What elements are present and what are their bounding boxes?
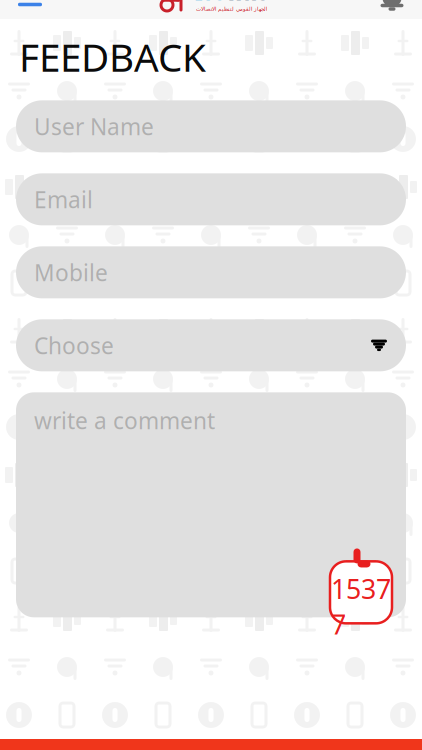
button[interactable]: Menu	[2, 0, 58, 19]
staticText: User Name	[34, 111, 154, 141]
staticText: ITU	[195, 0, 226, 5]
staticText: WRC	[226, 0, 267, 5]
button[interactable]: Mobile	[16, 246, 406, 298]
button[interactable]: Email	[16, 173, 406, 225]
staticText: write a comment	[34, 405, 215, 435]
button[interactable]: Choose	[16, 319, 406, 371]
button[interactable]: Call 15377	[330, 561, 392, 623]
staticText: FEEDBACK	[19, 31, 206, 82]
button[interactable]: User Name	[16, 100, 406, 152]
staticText: Choose	[34, 330, 114, 360]
staticText: 15377	[331, 571, 391, 642]
button[interactable]: Notifications	[364, 0, 420, 19]
staticText: Email	[34, 184, 93, 214]
staticText: Mobile	[34, 257, 108, 287]
staticText: الجهاز القومي لتنظيم الاتصالات	[195, 6, 266, 12]
